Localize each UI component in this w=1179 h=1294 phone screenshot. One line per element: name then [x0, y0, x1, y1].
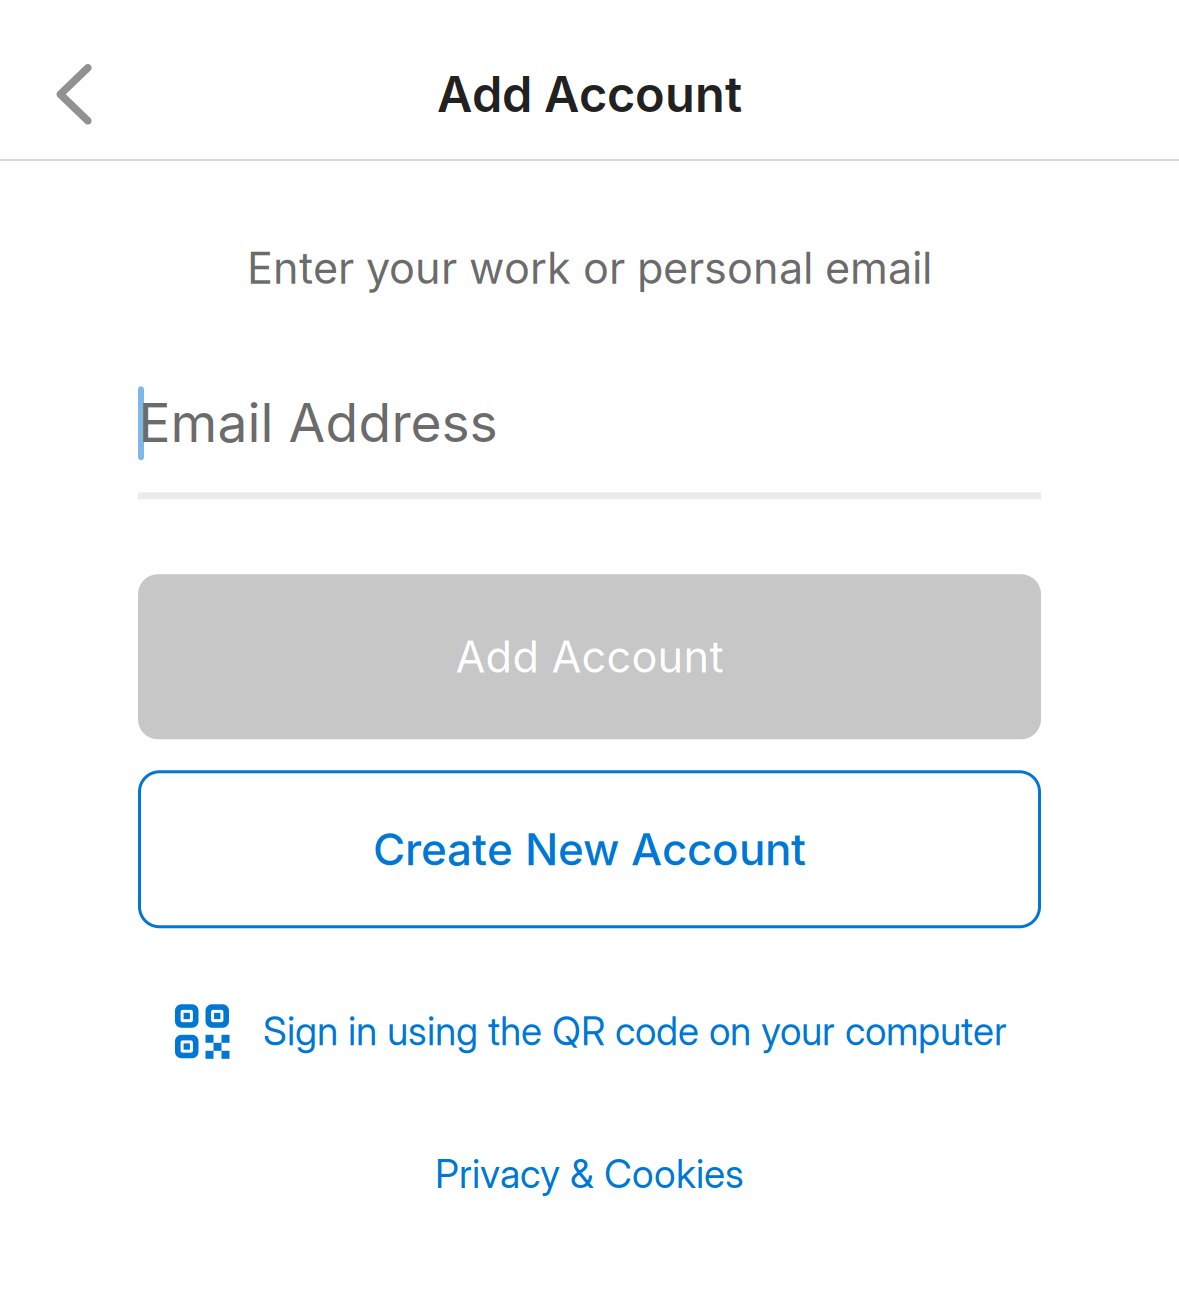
button[interactable]: Sign in using the QR code on your comput… — [175, 1000, 1007, 1062]
button[interactable]: Add Account — [138, 574, 1041, 739]
staticText: Create New Account — [373, 823, 806, 876]
staticText: Email Address — [138, 390, 497, 455]
button[interactable]: Back — [15, 35, 133, 153]
staticText: Privacy & Cookies — [435, 1150, 744, 1197]
button[interactable]: Privacy & Cookies — [419, 1151, 759, 1197]
staticText: Add Account — [455, 631, 723, 683]
staticText: Sign in using the QR code on your comput… — [263, 1008, 1007, 1054]
staticText: Add Account — [437, 65, 742, 124]
staticText: Enter your work or personal email — [247, 242, 932, 294]
button[interactable]: Create New Account — [138, 770, 1041, 928]
